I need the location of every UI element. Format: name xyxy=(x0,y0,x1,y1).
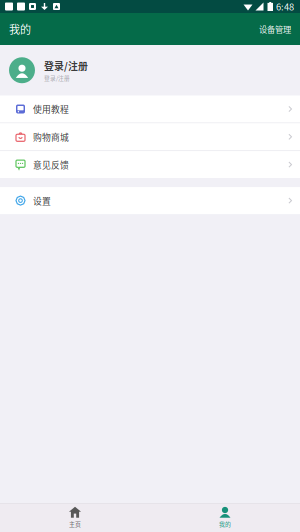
staticText: 使用教程 xyxy=(33,103,69,115)
button[interactable]: 设备管理 xyxy=(255,19,295,39)
button[interactable]: 登录/注册 xyxy=(0,45,300,95)
button[interactable]: 购物商城 xyxy=(0,123,300,150)
staticText: 6:48 xyxy=(276,0,294,13)
staticText: 登录/注册 xyxy=(44,58,88,73)
staticText: 主页 xyxy=(69,520,81,528)
staticText: 意见反馈 xyxy=(33,158,69,171)
button[interactable]: 设置 xyxy=(0,187,300,214)
staticText: 我的 xyxy=(9,21,31,37)
staticText: 设置 xyxy=(33,194,51,207)
button[interactable]: 意见反馈 xyxy=(0,151,300,178)
staticText: 购物商城 xyxy=(33,130,69,143)
staticText: 我的 xyxy=(219,520,231,528)
button[interactable]: 使用教程 xyxy=(0,95,300,122)
button[interactable]: 我的 xyxy=(150,503,300,531)
staticText: 登录/注册 xyxy=(44,74,70,82)
staticText: 设备管理 xyxy=(259,23,291,35)
button[interactable]: 主页 xyxy=(0,503,150,531)
